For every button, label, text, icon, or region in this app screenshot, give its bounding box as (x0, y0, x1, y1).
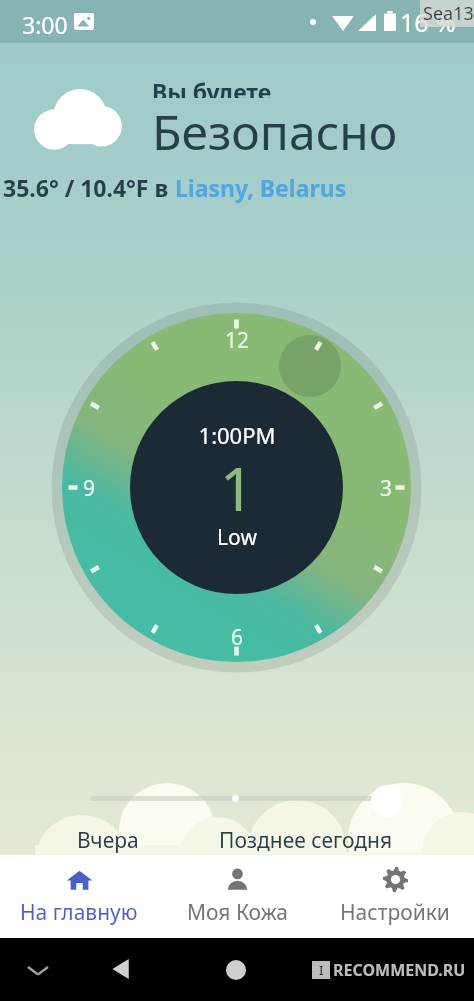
button[interactable]: Home (226, 960, 246, 980)
staticText: Моя Кожа (187, 898, 288, 927)
staticText: I (319, 961, 324, 979)
staticText: 12 (207, 326, 267, 355)
staticText: Безопасно (152, 99, 398, 164)
staticText: На главную (20, 898, 138, 927)
staticText: 6 (207, 623, 267, 652)
button[interactable]: Hide keyboard (28, 960, 48, 980)
button[interactable]: На главную (0, 855, 158, 938)
button[interactable]: Моя Кожа (158, 855, 316, 938)
staticText: Вы будете (152, 76, 272, 98)
staticText: Low (107, 523, 367, 552)
staticText: Liasny, Belarus (175, 172, 347, 203)
staticText: 3 (356, 474, 416, 503)
staticText: Настройки (340, 898, 450, 927)
button[interactable] (371, 785, 403, 817)
staticText: Вчера (77, 826, 139, 855)
staticText: 1:00PM (107, 420, 367, 450)
staticText: 16 % (400, 5, 456, 39)
button[interactable]: Настройки (316, 855, 474, 938)
staticText: 1 (107, 447, 367, 529)
staticText: RECOMMEND.RU (333, 959, 466, 981)
staticText: 35.6° / 10.4°F в (3, 172, 175, 203)
staticText: Позднее сегодня (219, 826, 393, 855)
button[interactable]: Back (110, 957, 134, 981)
button[interactable]: Позднее сегодня (186, 825, 426, 855)
staticText: Sea13 (423, 1, 474, 26)
staticText: 9 (59, 474, 119, 503)
staticText: 3:00 (22, 9, 68, 40)
button[interactable]: Вчера (48, 825, 168, 855)
